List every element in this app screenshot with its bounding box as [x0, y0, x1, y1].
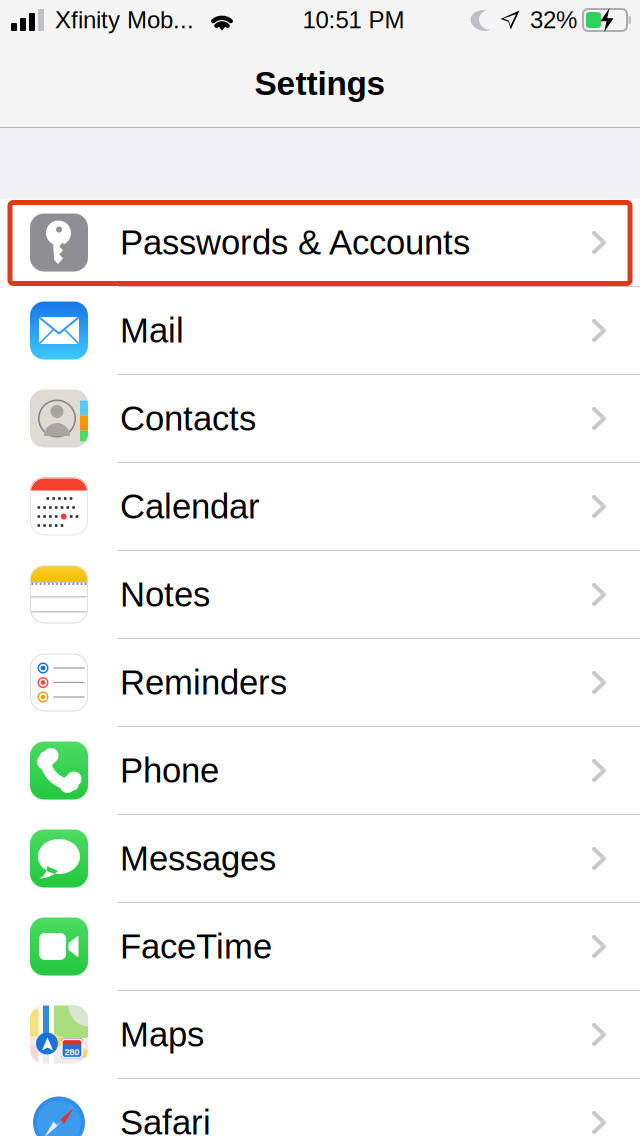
button[interactable]: Passwords & Accounts [0, 199, 640, 287]
button[interactable]: Phone [0, 727, 640, 815]
staticText: Safari [120, 1103, 211, 1136]
button[interactable]: Contacts [0, 375, 640, 463]
button[interactable]: Reminders [0, 639, 640, 727]
staticText: Phone [120, 751, 219, 790]
button[interactable]: Safari [0, 1079, 640, 1136]
staticText: Xfinity Mob... [55, 7, 194, 33]
button[interactable]: 280 [0, 991, 640, 1079]
button[interactable]: Mail [0, 287, 640, 375]
staticText: FaceTime [120, 927, 272, 966]
staticText: Messages [120, 839, 276, 878]
staticText: Passwords & Accounts [120, 223, 470, 262]
staticText: Calendar [120, 487, 260, 526]
staticText: Settings [254, 65, 385, 102]
button[interactable]: FaceTime [0, 903, 640, 991]
staticText: 32% [530, 7, 577, 33]
staticText: Notes [120, 575, 210, 614]
staticText: Maps [120, 1015, 204, 1054]
staticText: Contacts [120, 399, 256, 438]
staticText: Mail [120, 311, 184, 350]
button[interactable]: Notes [0, 551, 640, 639]
staticText: Reminders [120, 663, 287, 702]
staticText: 280 [64, 1047, 79, 1057]
staticText: 10:51 PM [302, 7, 404, 33]
button[interactable]: Messages [0, 815, 640, 903]
button[interactable]: Calendar [0, 463, 640, 551]
